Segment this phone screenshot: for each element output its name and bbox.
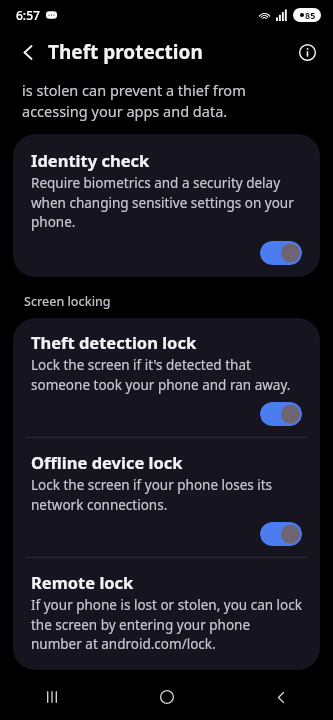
button[interactable]: Toggle (260, 241, 302, 265)
staticText: 6:57 (16, 7, 40, 23)
button[interactable]: Identity check (13, 134, 320, 277)
button[interactable]: Home (145, 675, 189, 719)
button[interactable]: Back (10, 34, 46, 70)
staticText: Theft detection lock (31, 331, 197, 353)
button[interactable]: Toggle (260, 402, 302, 426)
staticText: 85 (305, 9, 316, 21)
staticText: If your phone is lost or stolen, you can… (31, 596, 302, 653)
button[interactable]: Theft detection lock (13, 318, 320, 437)
button[interactable]: Remote lock (13, 558, 320, 670)
button[interactable]: Back (259, 675, 303, 719)
staticText: Identity check (31, 149, 150, 171)
staticText: Remote lock (31, 571, 134, 593)
button[interactable]: Offline device lock (13, 438, 320, 557)
staticText: Lock the screen if your phone loses its … (31, 476, 302, 514)
button[interactable]: Information (289, 34, 325, 70)
button[interactable]: Recent apps (30, 675, 74, 719)
button[interactable]: Toggle (260, 522, 302, 546)
staticText: is stolen can prevent a thief from acces… (22, 80, 311, 122)
staticText: Screen locking (24, 293, 111, 310)
staticText: Lock the screen if it's detected that so… (31, 356, 302, 394)
staticText: Require biometrics and a security delay … (31, 174, 302, 231)
staticText: Offline device lock (31, 451, 183, 473)
staticText: Theft protection (48, 39, 203, 65)
